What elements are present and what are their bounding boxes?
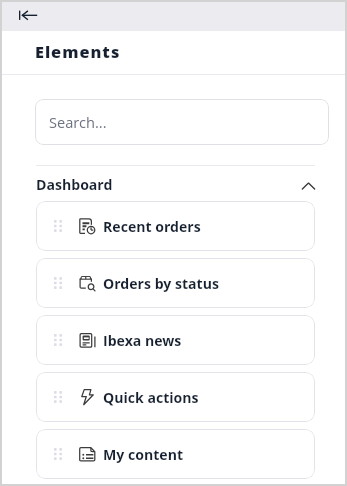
button[interactable]: Ibexa news: [36, 315, 315, 365]
button[interactable]: Collapse panel: [12, 3, 40, 31]
staticText: Orders by status: [103, 274, 219, 293]
button[interactable]: Orders by status: [36, 258, 315, 308]
button[interactable]: Dashboard: [36, 169, 315, 199]
staticText: Ibexa news: [103, 331, 182, 350]
button[interactable]: My content: [36, 429, 315, 479]
staticText: Quick actions: [103, 388, 199, 407]
button[interactable]: Recent orders: [36, 201, 315, 251]
staticText: Search...: [49, 112, 107, 132]
staticText: Recent orders: [103, 217, 201, 236]
button[interactable]: Search...: [35, 99, 329, 145]
staticText: My content: [103, 445, 184, 464]
staticText: Dashboard: [36, 175, 113, 194]
button[interactable]: Quick actions: [36, 372, 315, 422]
staticText: Elements: [35, 41, 121, 63]
